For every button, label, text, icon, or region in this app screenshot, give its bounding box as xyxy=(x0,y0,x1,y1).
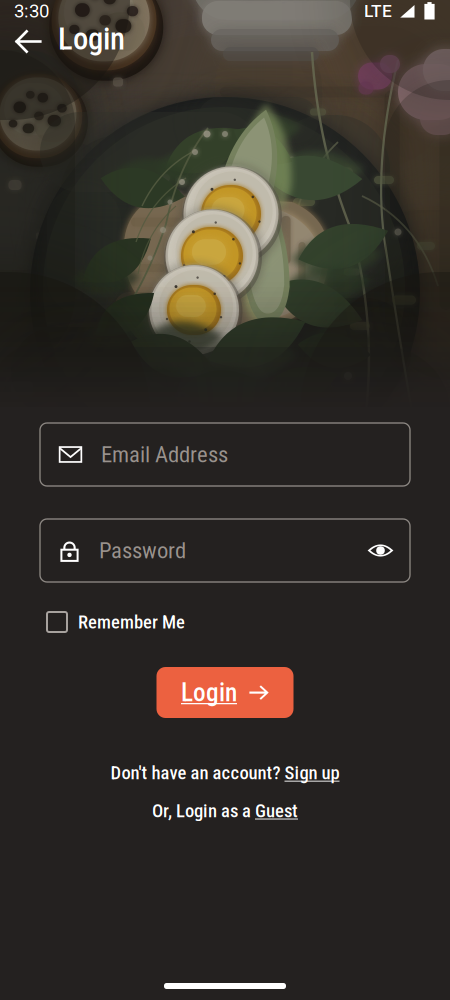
staticText: Or, Login as a xyxy=(152,800,255,822)
button[interactable]: Login xyxy=(156,667,293,718)
staticText: Login xyxy=(58,21,125,57)
button[interactable]: Show password xyxy=(367,541,394,560)
button[interactable]: Back xyxy=(13,24,42,53)
staticText: Password xyxy=(99,537,186,564)
button[interactable]: Sign up xyxy=(284,762,339,784)
staticText: Login xyxy=(181,678,237,707)
staticText: Sign up xyxy=(284,762,339,784)
staticText: LTE xyxy=(364,1,392,21)
button[interactable]: Guest xyxy=(255,800,298,822)
staticText: 3:30 xyxy=(14,0,49,22)
staticText: Remember Me xyxy=(78,611,185,633)
staticText: Guest xyxy=(255,800,298,822)
staticText: Don't have an account? xyxy=(110,762,284,784)
button[interactable]: Remember Me xyxy=(40,607,410,637)
staticText: Email Address xyxy=(101,441,228,468)
